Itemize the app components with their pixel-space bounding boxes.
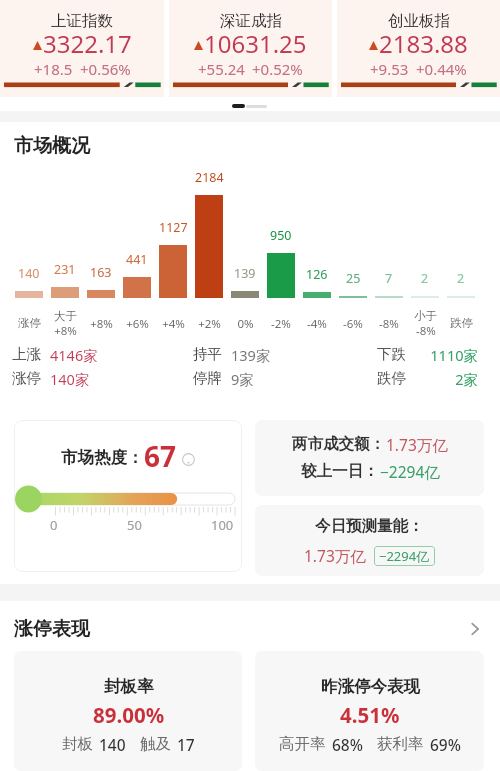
- button[interactable]: 昨涨停今表现: [255, 651, 484, 771]
- staticText: 4146家: [50, 345, 98, 363]
- staticText: 上证指数: [51, 11, 113, 31]
- staticText: 两市成交额：: [292, 434, 385, 454]
- staticText: +0.44%: [416, 59, 467, 79]
- button[interactable]: 市场热度：: [14, 420, 242, 572]
- staticText: 封板率: [104, 676, 154, 697]
- staticText: 25: [346, 270, 361, 287]
- staticText: 触及: [140, 734, 171, 754]
- staticText: 跌停: [450, 316, 473, 330]
- staticText: 67: [144, 437, 177, 475]
- staticText: 126: [306, 266, 328, 283]
- staticText: 高开率: [279, 734, 326, 754]
- staticText: 涨停: [18, 316, 41, 330]
- other: View more: [468, 622, 482, 636]
- staticText: 2183.88: [379, 27, 468, 60]
- staticText: +8%: [90, 316, 113, 332]
- staticText: 100: [211, 516, 234, 534]
- button[interactable]: 今日预测量能：: [255, 505, 484, 576]
- staticText: +2%: [198, 316, 221, 332]
- staticText: +9.53: [370, 59, 409, 79]
- staticText: 441: [126, 251, 148, 268]
- staticText: 2家: [415, 369, 478, 387]
- staticText: 163: [90, 264, 112, 281]
- staticText: 140: [99, 734, 126, 755]
- staticText: 140家: [50, 369, 90, 387]
- staticText: 2: [457, 270, 465, 287]
- staticText: 市场概况: [14, 134, 90, 158]
- staticText: 持平: [193, 345, 222, 363]
- button[interactable]: 涨停表现: [14, 617, 482, 641]
- staticText: 1.73万亿: [304, 545, 366, 566]
- staticText: +0.52%: [252, 59, 303, 79]
- staticText: -8%: [379, 316, 399, 332]
- staticText: 50: [127, 516, 142, 534]
- staticText: 139: [234, 265, 256, 282]
- staticText: 68%: [332, 734, 363, 755]
- staticText: 0: [50, 516, 58, 534]
- staticText: +4%: [162, 316, 185, 332]
- staticText: 950: [270, 227, 292, 244]
- staticText: 3322.17: [43, 27, 132, 60]
- staticText: 1110家: [415, 345, 478, 363]
- staticText: 跌停: [377, 369, 406, 387]
- button[interactable]: 上证指数: [0, 0, 164, 97]
- staticText: 9家: [231, 369, 254, 387]
- staticText: 1.73万亿: [386, 434, 448, 455]
- staticText: 2184: [195, 169, 224, 186]
- staticText: 17: [177, 734, 195, 755]
- staticText: 7: [385, 270, 393, 287]
- staticText: 下跌: [377, 345, 406, 363]
- staticText: 涨停: [12, 369, 41, 387]
- staticText: 89.00%: [93, 701, 165, 729]
- staticText: 大于: [54, 309, 77, 323]
- staticText: 停牌: [193, 369, 222, 387]
- staticText: 140: [18, 265, 40, 282]
- staticText: 创业板指: [388, 11, 450, 31]
- staticText: 获利率: [377, 734, 424, 754]
- staticText: +55.24: [198, 59, 245, 79]
- staticText: -6%: [343, 316, 363, 332]
- staticText: 较上一日：: [301, 461, 379, 481]
- staticText: 市场热度：: [61, 447, 144, 468]
- staticText: +0.56%: [80, 59, 131, 79]
- button[interactable]: 创业板指: [337, 0, 500, 97]
- staticText: 深证成指: [220, 11, 282, 31]
- staticText: 封板: [62, 734, 93, 754]
- staticText: 上涨: [12, 345, 41, 363]
- button[interactable]: 两市成交额：: [255, 420, 484, 496]
- staticText: -4%: [307, 316, 327, 332]
- staticText: 0%: [237, 316, 254, 332]
- staticText: +6%: [126, 316, 149, 332]
- button[interactable]: 深证成指: [169, 0, 332, 97]
- staticText: 今日预测量能：: [315, 516, 424, 536]
- staticText: 139家: [231, 345, 271, 363]
- staticText: -8%: [416, 323, 436, 337]
- staticText: 涨停表现: [14, 617, 90, 641]
- staticText: 4.51%: [340, 701, 400, 729]
- staticText: 231: [54, 261, 76, 278]
- staticText: 小于: [414, 309, 437, 323]
- staticText: 昨涨停今表现: [321, 676, 420, 697]
- staticText: +18.5: [34, 59, 73, 79]
- staticText: −2294亿: [380, 461, 440, 482]
- staticText: −2294亿: [379, 547, 430, 565]
- staticText: 10631.25: [204, 27, 307, 60]
- staticText: +8%: [54, 323, 77, 337]
- staticText: -2%: [271, 316, 291, 332]
- button[interactable]: 封板率: [14, 651, 242, 771]
- staticText: 2: [421, 270, 429, 287]
- staticText: 69%: [430, 734, 461, 755]
- staticText: 1127: [159, 219, 188, 236]
